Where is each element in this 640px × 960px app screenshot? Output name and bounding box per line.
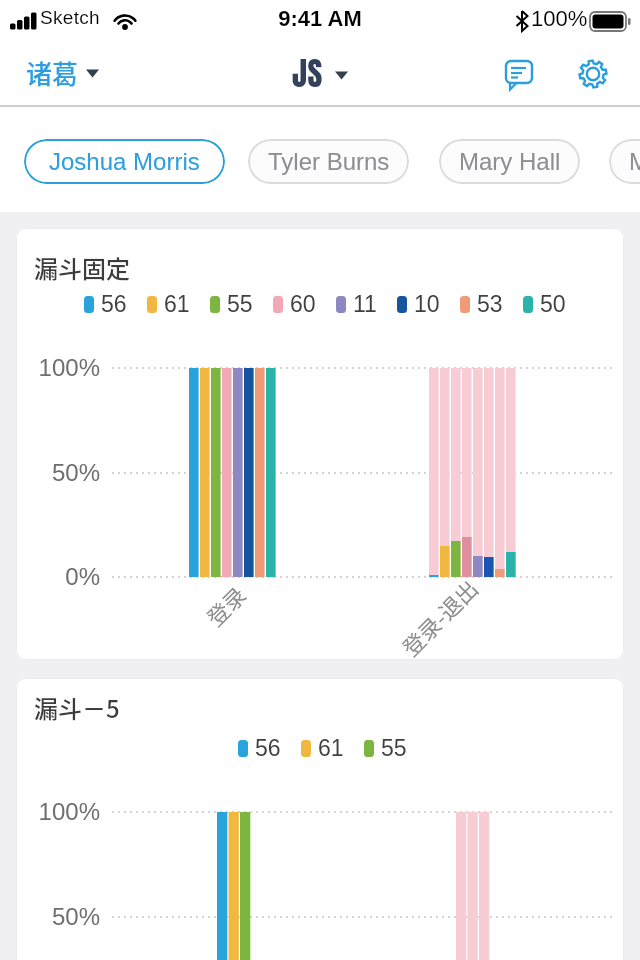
staticText: Sketch [40,7,100,28]
button[interactable]: 诸葛 [26,40,99,106]
button[interactable] [570,50,616,96]
staticText: 漏斗固定 [34,250,130,285]
staticText: 100% [531,6,588,31]
button[interactable]: Tyler Burns [248,139,409,184]
staticText: 50% [30,459,100,486]
staticText: 登录 [198,578,253,632]
staticText: 9:41 AM [272,6,368,31]
staticText: Matt Cook [629,148,640,175]
staticText: 漏斗－5 [34,690,120,725]
staticText: 0% [30,563,100,590]
button[interactable]: Matt Cook [609,139,640,184]
button[interactable] [496,50,542,96]
staticText: JS [292,49,323,97]
staticText: 100% [30,798,100,825]
staticText: 50 [540,291,566,317]
staticText: 56 [101,291,127,317]
staticText: 61 [164,291,190,317]
staticText: 55 [381,735,407,761]
staticText: 53 [477,291,503,317]
staticText: Tyler Burns [268,148,390,175]
staticText: 61 [318,735,344,761]
staticText: 50% [30,903,100,930]
staticText: 诸葛 [26,54,79,92]
staticText: 60 [290,291,316,317]
staticText: 10 [414,291,440,317]
staticText: 登录-退出 [394,572,484,660]
button[interactable]: Mary Hall [439,139,580,184]
staticText: 55 [227,291,253,317]
staticText: 11 [353,291,377,317]
staticText: Mary Hall [459,148,561,175]
staticText: 56 [255,735,281,761]
button[interactable]: Joshua Morris [24,139,225,184]
staticText: 100% [30,354,100,381]
button[interactable]: JS [292,40,348,106]
staticText: Joshua Morris [49,148,200,175]
